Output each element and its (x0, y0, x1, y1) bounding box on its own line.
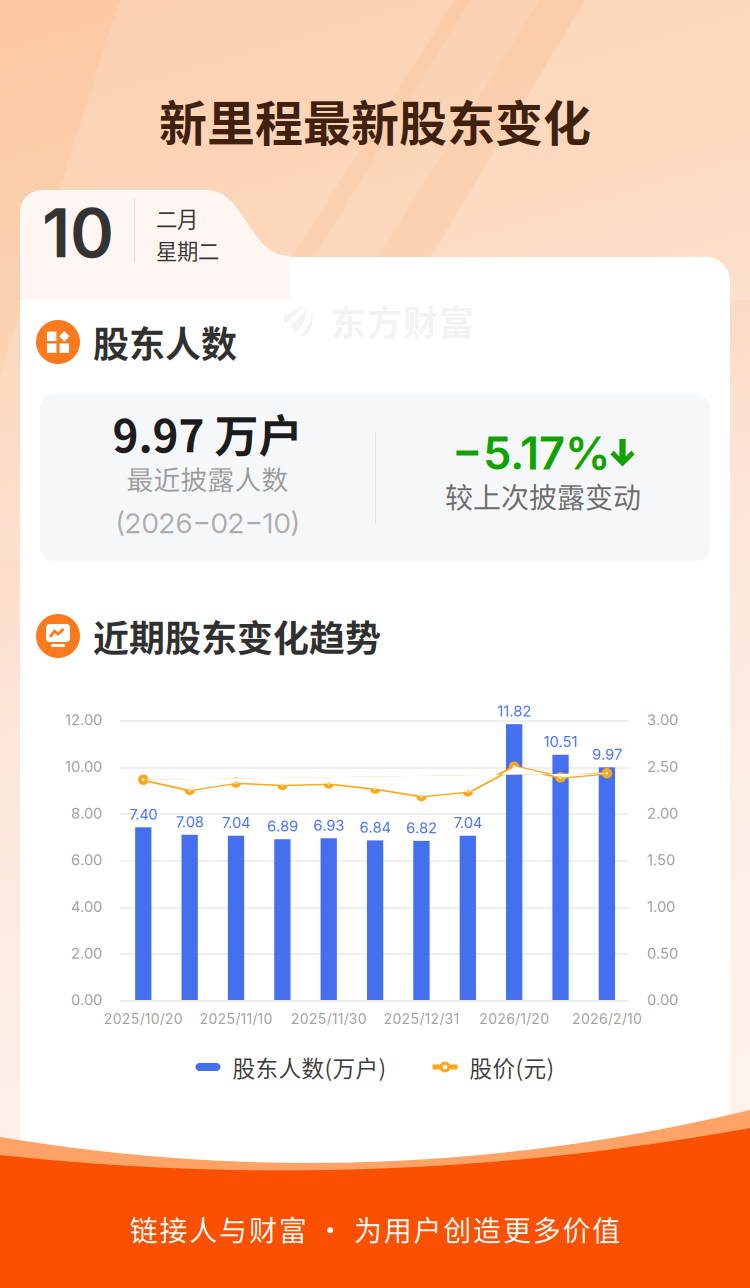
staticText: 6.89 (267, 817, 298, 835)
staticText: 9.97 万户 (112, 401, 302, 465)
staticText: 股价(元) (469, 1051, 554, 1083)
staticText: 0.50 (647, 944, 678, 962)
staticText: 7.40 (129, 805, 157, 823)
staticText: 10 (42, 193, 114, 273)
staticText: 12.00 (65, 711, 102, 729)
staticText: 6.82 (406, 819, 437, 837)
staticText: 1.00 (647, 898, 675, 915)
staticText: 二月 (156, 203, 198, 233)
staticText: 2.50 (647, 758, 678, 775)
staticText: 2025/10/20 (104, 1010, 183, 1027)
staticText: 星期二 (156, 235, 219, 265)
staticText: 0.00 (647, 991, 678, 1009)
staticText: 6.84 (360, 818, 391, 836)
staticText: 2026/2/10 (572, 1010, 642, 1027)
staticText: 2.00 (647, 804, 678, 822)
staticText: 2025/11/30 (291, 1010, 367, 1027)
staticText: 7.04 (222, 814, 250, 832)
staticText: 链接人与财富 · 为用户创造更多价值 (130, 1209, 620, 1249)
staticText: 2025/12/31 (383, 1010, 459, 1027)
staticText: 7.08 (176, 813, 204, 831)
staticText: 3.00 (647, 711, 678, 729)
staticText: 东方财富 (331, 296, 474, 346)
staticText: 股东人数(万户) (232, 1051, 386, 1083)
staticText: 9.97 (592, 745, 622, 763)
staticText: 7.04 (454, 814, 482, 832)
staticText: 近期股东变化趋势 (93, 610, 381, 662)
staticText: 股东人数 (93, 316, 237, 368)
staticText: 8.00 (71, 804, 102, 822)
staticText: 最近披露人数 (126, 459, 288, 497)
staticText: 0.00 (71, 991, 102, 1009)
staticText: −5.17% (452, 426, 611, 480)
staticText: 新里程最新股东变化 (159, 85, 591, 155)
staticText: 2025/11/10 (199, 1010, 272, 1027)
staticText: 较上次披露变动 (445, 476, 641, 516)
staticText: 2.00 (71, 944, 102, 962)
staticText: 11.82 (497, 702, 531, 720)
staticText: 2026/1/20 (479, 1010, 549, 1027)
staticText: 1.50 (647, 851, 675, 869)
staticText: 6.00 (71, 851, 102, 869)
staticText: 10.51 (543, 733, 577, 751)
staticText: (2026−02−10) (115, 506, 299, 540)
staticText: 6.93 (313, 816, 344, 834)
staticText: 10.00 (65, 758, 102, 775)
staticText: 4.00 (71, 898, 102, 915)
